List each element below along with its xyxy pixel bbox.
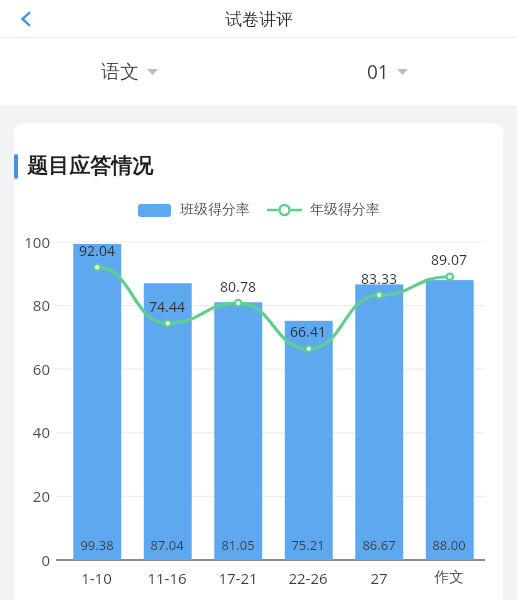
- staticText: 83.33: [361, 269, 397, 288]
- staticText: 27: [370, 568, 388, 588]
- staticText: 81.05: [221, 536, 255, 554]
- staticText: 100: [24, 232, 50, 252]
- staticText: 17-21: [218, 568, 258, 588]
- staticText: 86.67: [362, 536, 396, 554]
- button[interactable]: Back: [8, 1, 44, 37]
- staticText: 试卷讲评: [225, 9, 293, 30]
- staticText: 作文: [434, 568, 464, 587]
- staticText: 88.00: [432, 536, 466, 554]
- staticText: 66.41: [290, 322, 326, 341]
- staticText: 99.38: [80, 536, 114, 554]
- staticText: 年级得分率: [310, 201, 380, 219]
- staticText: 74.44: [149, 297, 185, 316]
- staticText: 语文: [101, 60, 139, 84]
- staticText: 87.04: [150, 536, 184, 554]
- staticText: 92.04: [79, 241, 115, 260]
- staticText: 题目应答情况: [27, 153, 153, 179]
- staticText: 22-26: [288, 568, 328, 588]
- staticText: 11-16: [147, 568, 187, 588]
- staticText: 班级得分率: [180, 201, 250, 219]
- staticText: 20: [32, 486, 50, 506]
- staticText: 80.78: [220, 277, 256, 296]
- staticText: 60: [32, 359, 50, 379]
- button[interactable]: 01: [258, 38, 517, 105]
- staticText: 75.21: [291, 536, 325, 554]
- staticText: 1-10: [81, 568, 112, 588]
- button[interactable]: 语文: [0, 38, 258, 105]
- staticText: 0: [41, 550, 50, 570]
- staticText: 80: [32, 295, 50, 315]
- staticText: 89.07: [431, 250, 467, 269]
- staticText: 40: [32, 422, 50, 442]
- staticText: 01: [367, 59, 389, 85]
